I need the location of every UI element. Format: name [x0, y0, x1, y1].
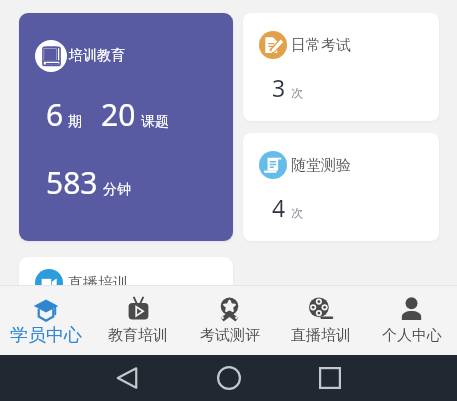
button[interactable]: Recents: [300, 355, 360, 401]
staticText: 直播培训: [68, 274, 128, 293]
staticText: 3: [272, 72, 286, 103]
button[interactable]: 个人中心: [366, 286, 457, 355]
button[interactable]: 直播培训: [19, 257, 233, 357]
button[interactable]: 学员中心: [0, 286, 92, 355]
staticText: 课题: [141, 113, 169, 131]
button[interactable]: 随堂测验: [243, 133, 439, 241]
staticText: 培训教育: [69, 47, 125, 65]
staticText: 学员中心: [10, 324, 82, 347]
staticText: 6: [46, 94, 64, 135]
staticText: 随堂测验: [291, 156, 351, 175]
button[interactable]: 教育培训: [92, 286, 184, 355]
button[interactable]: Home: [199, 355, 259, 401]
button[interactable]: 培训教育: [19, 13, 233, 241]
staticText: 583: [46, 162, 98, 203]
other: Recents: [319, 367, 341, 389]
staticText: 分钟: [103, 181, 131, 199]
staticText: 教育培训: [108, 326, 168, 345]
button[interactable]: 日常考试: [243, 13, 439, 121]
staticText: 4: [272, 192, 286, 223]
button[interactable]: 考试测评: [184, 286, 275, 355]
staticText: 考试测评: [200, 326, 260, 345]
staticText: 20: [101, 94, 136, 135]
other: Home: [217, 366, 241, 390]
staticText: 日常考试: [291, 36, 351, 55]
staticText: 直播培训: [291, 326, 351, 345]
other: Back: [116, 367, 138, 389]
button[interactable]: Back: [97, 355, 157, 401]
staticText: 次: [291, 85, 303, 100]
staticText: 次: [291, 205, 303, 220]
staticText: 个人中心: [382, 326, 442, 345]
button[interactable]: 直播培训: [275, 286, 366, 355]
staticText: 期: [68, 113, 82, 131]
